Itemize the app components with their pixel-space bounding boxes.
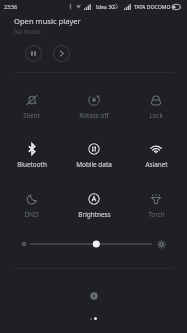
- staticText: Asianet: [145, 160, 168, 169]
- button[interactable]: Brightness slider: [30, 239, 152, 249]
- staticText: DND: [24, 210, 39, 219]
- staticText: No music: [14, 27, 42, 35]
- button[interactable]: Asianet: [125, 136, 187, 177]
- staticText: 23:56: [4, 3, 18, 10]
- button[interactable]: Pause: [25, 45, 42, 62]
- button[interactable]: Mobile data: [63, 136, 125, 177]
- staticText: Idea 3G: [96, 3, 115, 10]
- button[interactable]: DND: [0, 186, 63, 227]
- button[interactable]: Brightness: [63, 186, 125, 227]
- button[interactable]: Lock: [125, 87, 187, 128]
- staticText: Mobile data: [76, 160, 112, 169]
- staticText: Torch: [148, 210, 165, 219]
- button[interactable]: Rotate off: [63, 87, 125, 128]
- button[interactable]: Torch: [125, 186, 187, 227]
- staticText: Open music player: [14, 16, 81, 26]
- staticText: TATA DOCOMO: [134, 3, 171, 10]
- button[interactable]: Next track: [53, 45, 70, 62]
- staticText: Brightness: [78, 210, 111, 219]
- button[interactable]: Settings: [82, 284, 106, 308]
- button[interactable]: Silent: [0, 87, 63, 128]
- button[interactable]: Bluetooth: [0, 136, 63, 177]
- staticText: Rotate off: [79, 111, 109, 120]
- staticText: Silent: [23, 111, 40, 120]
- staticText: Bluetooth: [17, 160, 47, 169]
- staticText: Lock: [149, 111, 163, 120]
